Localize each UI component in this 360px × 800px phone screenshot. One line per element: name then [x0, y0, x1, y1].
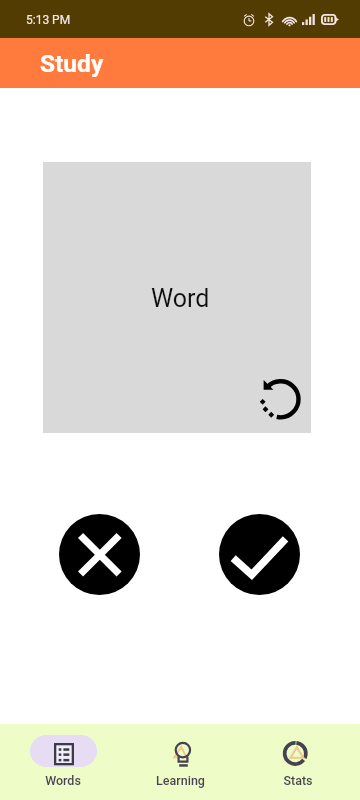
button[interactable]: Don't know	[59, 514, 140, 595]
staticText: Words	[45, 773, 81, 788]
button[interactable]: Words	[4, 724, 122, 800]
button[interactable]: Stats	[239, 724, 356, 800]
button[interactable]: Flip card	[261, 376, 305, 422]
button[interactable]: Learning	[122, 724, 239, 800]
staticText: Study	[40, 49, 104, 78]
staticText: Stats	[283, 773, 313, 788]
staticText: 5:13 PM	[26, 13, 71, 27]
button[interactable]: Know	[219, 514, 300, 595]
button[interactable]: Word	[43, 162, 311, 433]
staticText: Learning	[156, 773, 205, 788]
staticText: Word	[151, 284, 210, 313]
